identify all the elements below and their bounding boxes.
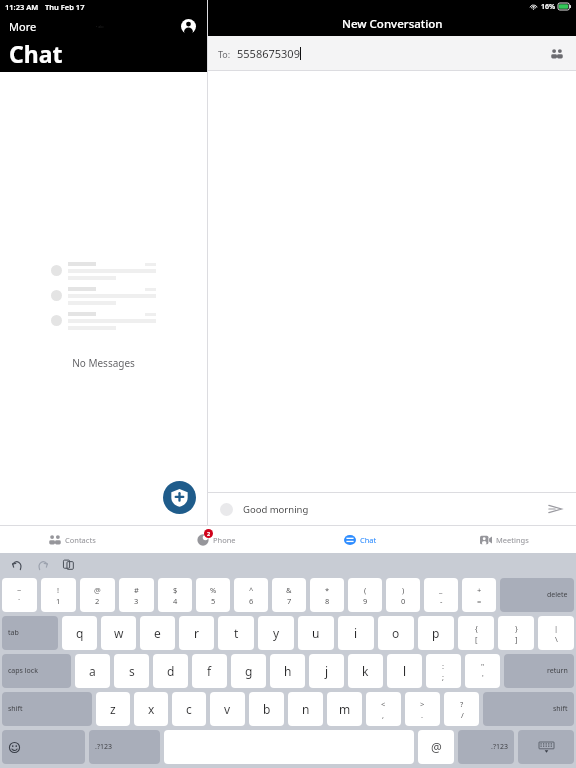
staticText: delete <box>547 590 568 600</box>
staticText: } <box>515 623 518 633</box>
staticText: t <box>234 625 239 641</box>
button[interactable]: o <box>378 616 414 650</box>
button[interactable]: k <box>348 654 383 688</box>
button[interactable]: caps lock <box>2 654 71 688</box>
staticText: x <box>148 701 155 717</box>
button[interactable]: z <box>96 692 130 726</box>
button[interactable]: shift <box>483 692 574 726</box>
button[interactable]: p <box>418 616 454 650</box>
button[interactable]: Emoji <box>2 730 85 764</box>
button[interactable]: Hide keyboard <box>518 730 574 764</box>
button[interactable]: return <box>504 654 574 688</box>
button[interactable]: w <box>101 616 136 650</box>
staticText: . <box>421 710 424 720</box>
button[interactable]: Redo <box>35 557 50 572</box>
button[interactable]: ? <box>444 692 479 726</box>
button[interactable]: Meetings <box>432 526 576 553</box>
button[interactable]: > <box>405 692 440 726</box>
button[interactable]: ( <box>348 578 382 612</box>
button[interactable]: & <box>272 578 306 612</box>
button[interactable]: Undo <box>9 557 24 572</box>
button[interactable]: Add contacts <box>548 45 566 63</box>
button[interactable]: # <box>119 578 154 612</box>
staticText: n <box>302 701 310 717</box>
button[interactable]: v <box>210 692 245 726</box>
button[interactable]: i <box>338 616 374 650</box>
button[interactable]: x <box>134 692 168 726</box>
button[interactable]: < <box>366 692 401 726</box>
staticText: \ <box>555 634 558 644</box>
staticText: 3 <box>134 596 139 606</box>
staticText: ` <box>18 596 21 606</box>
button[interactable]: + <box>462 578 496 612</box>
button[interactable]: $ <box>158 578 192 612</box>
staticText: = <box>477 596 482 606</box>
button[interactable]: ^ <box>234 578 268 612</box>
button[interactable]: " <box>465 654 500 688</box>
button[interactable]: To: <box>208 36 576 71</box>
staticText: tab <box>8 628 19 638</box>
staticText: l <box>403 663 407 679</box>
button[interactable]: c <box>172 692 206 726</box>
staticText: Phone <box>213 535 236 545</box>
button[interactable]: e <box>140 616 175 650</box>
button[interactable]: shift <box>2 692 92 726</box>
button[interactable]: Chat <box>288 526 432 553</box>
button[interactable]: New message <box>163 481 196 514</box>
button[interactable]: { <box>458 616 494 650</box>
button[interactable]: a <box>75 654 110 688</box>
button[interactable]: t <box>218 616 254 650</box>
button[interactable]: tab <box>2 616 58 650</box>
button[interactable]: | <box>538 616 574 650</box>
staticText: 6 <box>249 596 254 606</box>
button[interactable]: u <box>298 616 334 650</box>
button[interactable]: h <box>270 654 305 688</box>
staticText: ( <box>364 585 367 595</box>
button[interactable]: 2 <box>144 526 288 553</box>
button[interactable]: } <box>498 616 534 650</box>
button[interactable]: : <box>426 654 461 688</box>
button[interactable]: q <box>62 616 97 650</box>
button[interactable]: j <box>309 654 344 688</box>
button[interactable]: * <box>310 578 344 612</box>
staticText: 0 <box>401 596 406 606</box>
button[interactable]: r <box>179 616 214 650</box>
button[interactable]: ! <box>41 578 76 612</box>
staticText: ^ <box>249 585 254 595</box>
button[interactable]: Paste <box>61 557 76 572</box>
button[interactable]: _ <box>424 578 458 612</box>
button[interactable]: d <box>153 654 188 688</box>
button[interactable]: .?123 <box>458 730 514 764</box>
button[interactable]: s <box>114 654 149 688</box>
staticText: shift <box>8 704 23 714</box>
staticText: No Messages <box>0 356 207 370</box>
staticText: & <box>286 585 292 595</box>
button[interactable]: ~ <box>2 578 37 612</box>
button[interactable]: f <box>192 654 227 688</box>
staticText: Thu Feb 17 <box>45 2 85 12</box>
button[interactable]: m <box>327 692 362 726</box>
button[interactable]: @ <box>418 730 454 764</box>
staticText: ] <box>515 634 518 644</box>
staticText: # <box>134 585 139 595</box>
button[interactable]: @ <box>80 578 115 612</box>
button[interactable]: ) <box>386 578 420 612</box>
button[interactable]: Good morning <box>208 493 576 525</box>
staticText: Chat <box>360 535 377 545</box>
button[interactable]: % <box>196 578 230 612</box>
button[interactable]: y <box>258 616 294 650</box>
button[interactable]: delete <box>500 578 574 612</box>
staticText: q <box>76 625 84 641</box>
button[interactable]: Contacts <box>0 526 144 553</box>
button[interactable]: b <box>249 692 284 726</box>
button[interactable]: n <box>288 692 323 726</box>
button[interactable]: l <box>387 654 422 688</box>
button[interactable]: Account <box>178 16 198 36</box>
button[interactable]: g <box>231 654 266 688</box>
button[interactable]: More <box>9 19 37 34</box>
button[interactable]: .?123 <box>89 730 160 764</box>
staticText: e <box>154 625 161 641</box>
staticText: : <box>442 661 445 671</box>
button[interactable]: Send <box>546 500 564 518</box>
